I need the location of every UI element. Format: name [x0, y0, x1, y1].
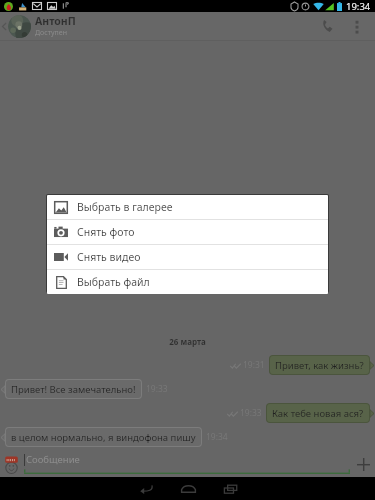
staticText: 19:33 — [240, 407, 262, 419]
staticText: Доступен — [35, 28, 67, 38]
staticText: 19:34 — [206, 431, 228, 443]
button[interactable]: Recent apps — [211, 477, 249, 500]
staticText: в целом нормально, я виндофона пишу — [11, 431, 196, 444]
button[interactable]: Выбрать файл — [47, 270, 328, 294]
button[interactable]: в целом нормально, я виндофона пишу — [6, 428, 201, 446]
button[interactable]: Emoji — [3, 452, 20, 476]
staticText: 19:31 — [243, 359, 265, 371]
other: Back — [1, 21, 7, 32]
button[interactable]: Call — [313, 12, 343, 40]
staticText: 19:33 — [146, 383, 168, 395]
button[interactable]: Home — [169, 477, 207, 500]
staticText: Выбрать в галерее — [77, 200, 173, 214]
staticText: Привет, как жизнь? — [275, 359, 364, 372]
staticText: Как тебе новая ася? — [272, 407, 364, 420]
button[interactable]: Back — [0, 12, 375, 40]
button[interactable]: Привет! Все замечательно! — [6, 380, 141, 398]
button[interactable]: Выбрать в галерее — [47, 195, 328, 219]
staticText: Снять видео — [77, 250, 141, 264]
button[interactable]: Как тебе новая ася? — [267, 404, 369, 422]
staticText: АнтонП — [35, 14, 76, 28]
staticText: Выбрать файл — [77, 275, 150, 289]
staticText: 19:34 — [346, 0, 371, 12]
button[interactable]: Привет, как жизнь? — [270, 356, 369, 374]
staticText: 26 марта — [0, 336, 375, 347]
staticText: Привет! Все замечательно! — [11, 383, 136, 396]
button[interactable]: Attach — [352, 452, 374, 476]
button[interactable]: Back — [127, 477, 165, 500]
button[interactable]: Снять фото — [47, 220, 328, 244]
staticText: Снять фото — [77, 225, 135, 239]
button[interactable]: More options — [343, 12, 371, 40]
button[interactable]: Снять видео — [47, 245, 328, 269]
staticText: Сообщение — [26, 453, 80, 466]
